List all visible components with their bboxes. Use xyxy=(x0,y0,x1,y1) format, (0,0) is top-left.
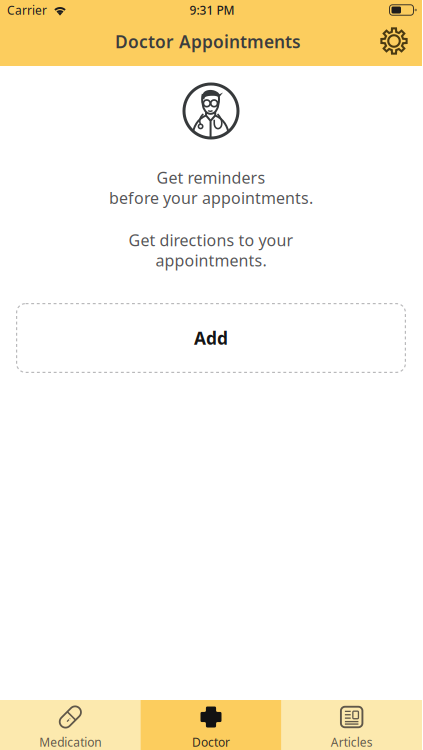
button[interactable]: Settings xyxy=(372,20,416,66)
button[interactable]: Articles xyxy=(281,700,422,750)
staticText: Doctor xyxy=(192,734,230,750)
staticText: Get reminders xyxy=(156,167,265,188)
staticText: Medication xyxy=(39,734,101,750)
staticText: Articles xyxy=(331,734,373,750)
button[interactable]: Add xyxy=(0,303,422,373)
staticText: Carrier xyxy=(7,2,47,18)
staticText: 9:31 PM xyxy=(189,2,234,18)
staticText: before your appointments. xyxy=(109,187,313,208)
staticText: Add xyxy=(194,326,228,349)
staticText: Get directions to your xyxy=(128,229,293,251)
button[interactable]: Medication xyxy=(0,700,141,750)
staticText: Doctor Appointments xyxy=(115,30,301,53)
staticText: appointments. xyxy=(155,250,266,271)
button[interactable]: Doctor xyxy=(141,700,281,750)
